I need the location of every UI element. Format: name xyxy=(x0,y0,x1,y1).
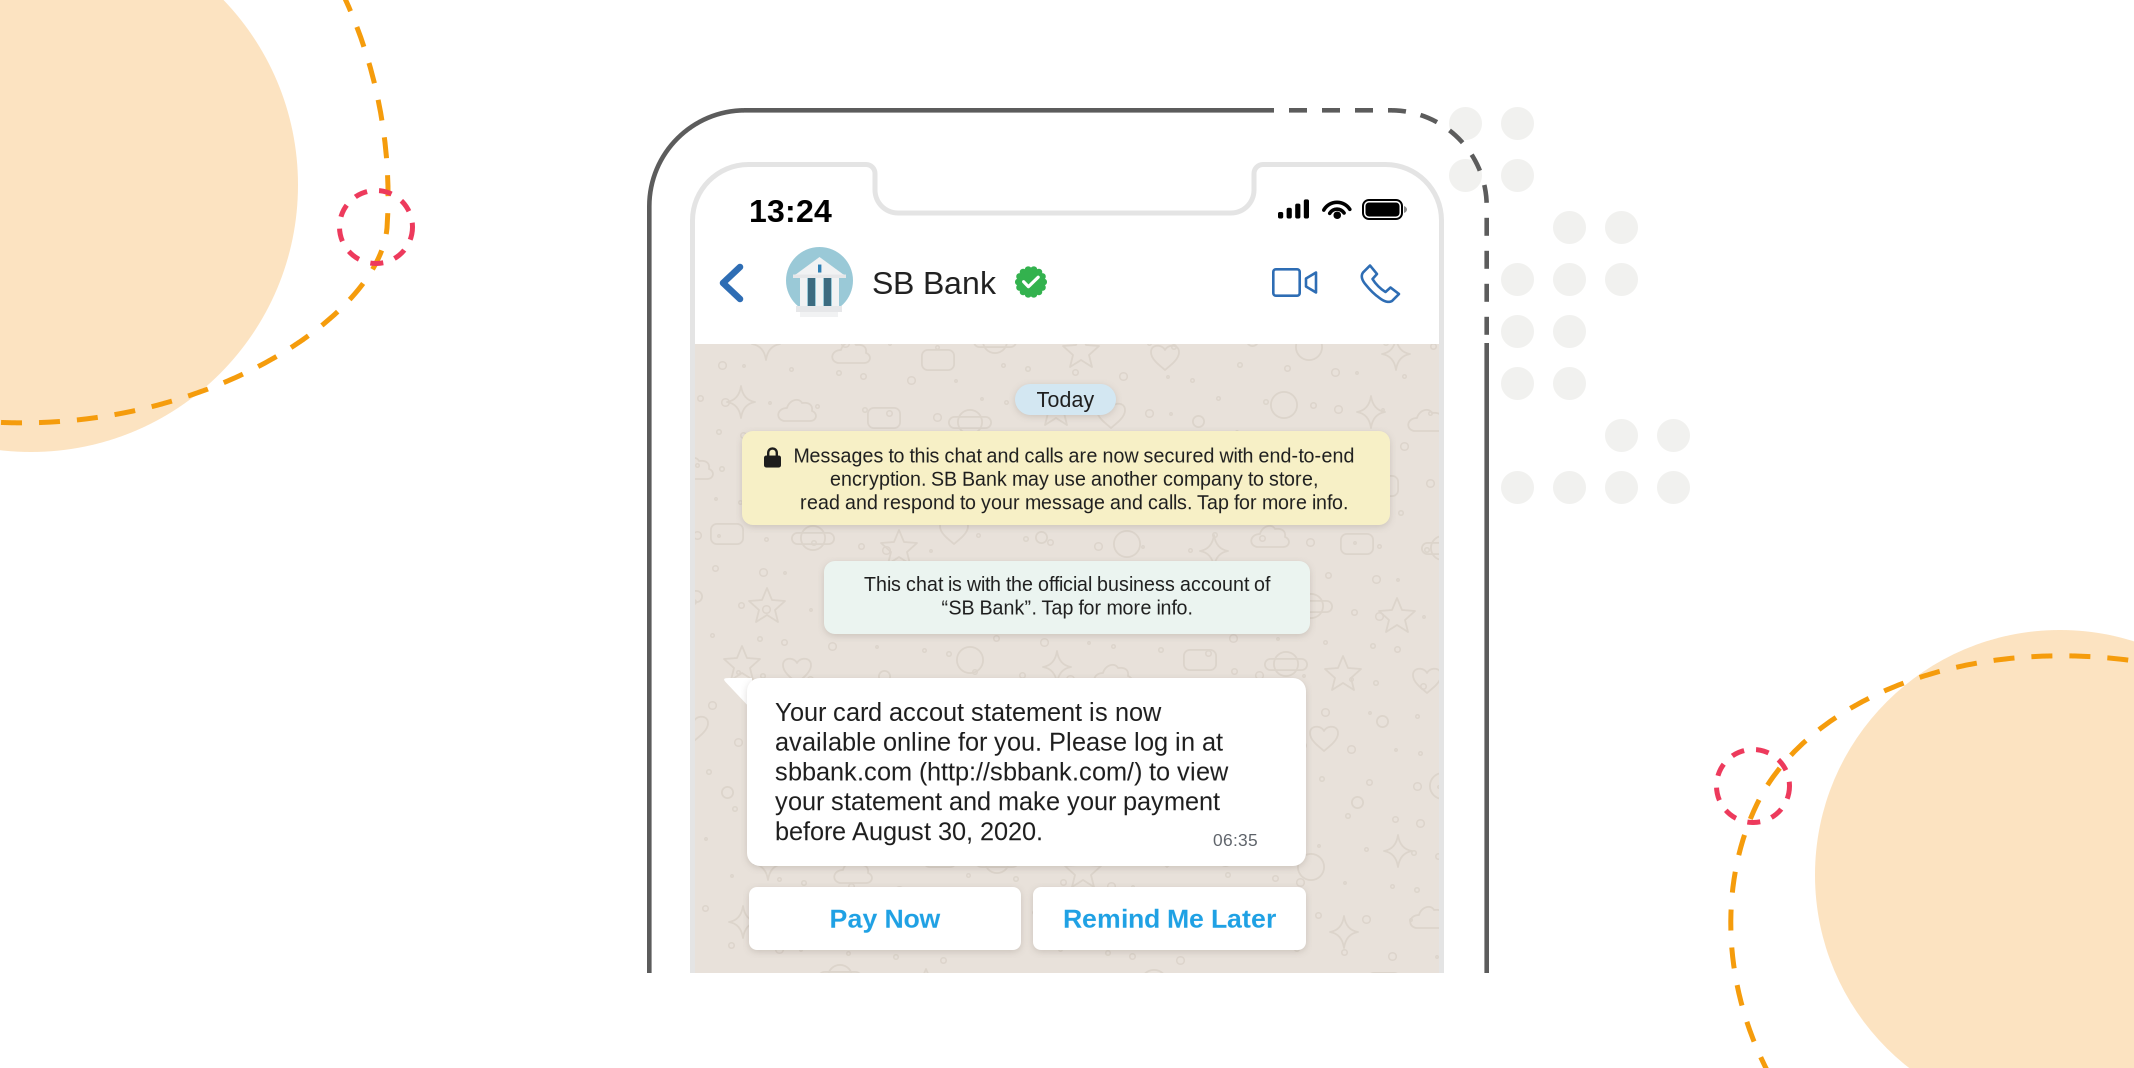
staticText: SB Bank xyxy=(872,265,996,301)
button[interactable]: Video call xyxy=(1272,268,1318,297)
staticText: encryption. SB Bank may use another comp… xyxy=(830,468,1318,490)
button[interactable]: Pay Now xyxy=(749,887,1021,950)
staticText: “SB Bank”. Tap for more info. xyxy=(941,597,1192,619)
staticText: This chat is with the official business … xyxy=(864,573,1270,595)
staticText: Pay Now xyxy=(829,904,940,933)
staticText: Today xyxy=(1036,388,1094,411)
button[interactable]: Today xyxy=(1015,384,1116,415)
staticText: your statement and make your payment xyxy=(775,787,1220,816)
staticText: read and respond to your message and cal… xyxy=(800,491,1348,513)
staticText: available online for you. Please log in … xyxy=(775,728,1223,756)
staticText: 06:35 xyxy=(1213,830,1258,850)
button[interactable]: Back xyxy=(706,264,758,302)
button[interactable]: Messages to this chat and calls are now … xyxy=(742,431,1390,525)
button[interactable]: This chat is with the official business … xyxy=(824,561,1310,634)
staticText: before August 30, 2020. xyxy=(775,817,1043,845)
button[interactable]: Voice call xyxy=(1361,264,1401,304)
staticText: Messages to this chat and calls are now … xyxy=(793,445,1354,467)
staticText: sbbank.com (http://sbbank.com/) to view xyxy=(775,758,1228,786)
staticText: Remind Me Later xyxy=(1063,904,1276,933)
staticText: 13:24 xyxy=(749,193,832,229)
button[interactable]: Remind Me Later xyxy=(1033,887,1306,950)
staticText: Your card accout statement is now xyxy=(775,698,1161,726)
